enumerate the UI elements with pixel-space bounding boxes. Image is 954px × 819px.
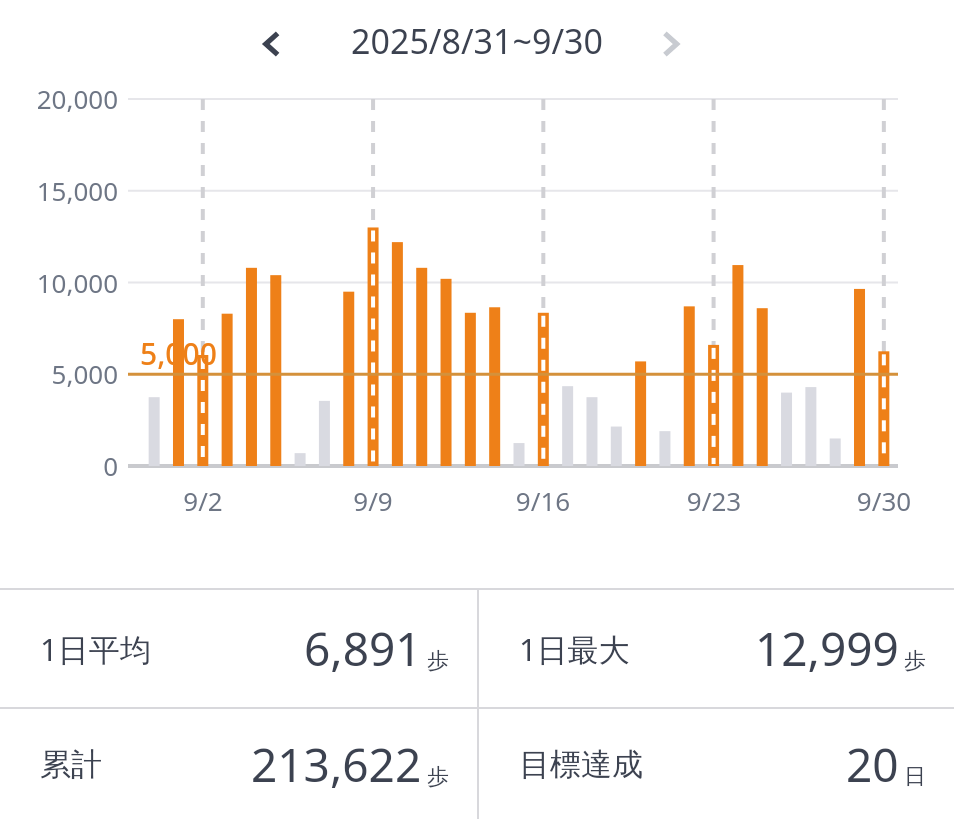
staticText: 0 — [0, 448, 118, 483]
staticText: 9/23 — [664, 483, 764, 518]
staticText: 9/30 — [834, 483, 934, 518]
staticText: 2025/8/31~9/30 — [351, 18, 603, 64]
staticText: 213,622 — [251, 733, 422, 796]
staticText: 12,999 — [755, 617, 899, 680]
staticText: 9/16 — [493, 483, 593, 518]
staticText: 10,000 — [0, 265, 118, 300]
staticText: 9/9 — [323, 483, 423, 518]
staticText: 日 — [904, 763, 926, 791]
staticText: 累計 — [40, 745, 102, 784]
staticText: 20,000 — [0, 81, 118, 116]
staticText: 9/2 — [153, 483, 253, 518]
staticText: 5,000 — [0, 356, 118, 391]
staticText: 15,000 — [0, 173, 118, 208]
button[interactable]: Previous period — [248, 21, 294, 67]
button[interactable]: 1日平均 — [0, 590, 477, 707]
staticText: 歩 — [427, 647, 449, 675]
button[interactable]: 目標達成 — [479, 709, 954, 819]
button[interactable]: Next period — [648, 21, 694, 67]
button[interactable]: 累計 — [0, 709, 477, 819]
button[interactable]: 1日最大 — [479, 590, 954, 707]
staticText: 5,000 — [140, 333, 217, 374]
staticText: 1日最大 — [519, 628, 630, 670]
staticText: 目標達成 — [519, 745, 643, 784]
staticText: 1日平均 — [40, 628, 151, 670]
staticText: 歩 — [904, 647, 926, 675]
staticText: 6,891 — [304, 617, 422, 680]
staticText: 歩 — [427, 763, 449, 791]
staticText: 20 — [846, 733, 899, 796]
